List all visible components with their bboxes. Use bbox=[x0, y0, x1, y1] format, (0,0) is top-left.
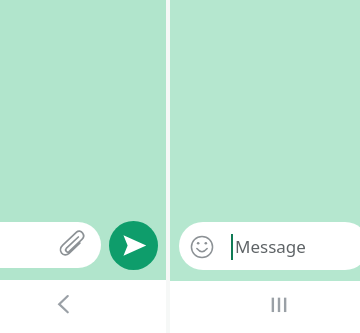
button[interactable]: Message input field bbox=[179, 222, 360, 270]
button[interactable]: Message input field bbox=[0, 222, 101, 268]
button[interactable]: Send bbox=[109, 221, 158, 270]
staticText: Message bbox=[235, 235, 306, 258]
button[interactable]: Recent apps bbox=[264, 290, 294, 320]
button[interactable]: Emoji bbox=[190, 235, 214, 259]
button[interactable]: Back bbox=[49, 289, 79, 319]
button[interactable]: Attach file bbox=[59, 231, 89, 261]
